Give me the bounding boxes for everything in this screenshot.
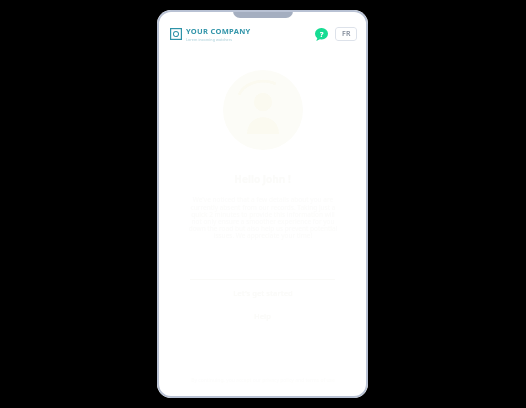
button[interactable]: YOUR COMPANY bbox=[168, 24, 253, 44]
button[interactable]: Help bbox=[315, 28, 328, 41]
staticText: ? bbox=[320, 30, 324, 40]
staticText: Lorem incoming watchers bbox=[186, 37, 233, 42]
staticText: FR bbox=[342, 29, 351, 39]
staticText: YOUR COMPANY bbox=[186, 26, 251, 36]
button[interactable]: FR bbox=[335, 27, 357, 41]
